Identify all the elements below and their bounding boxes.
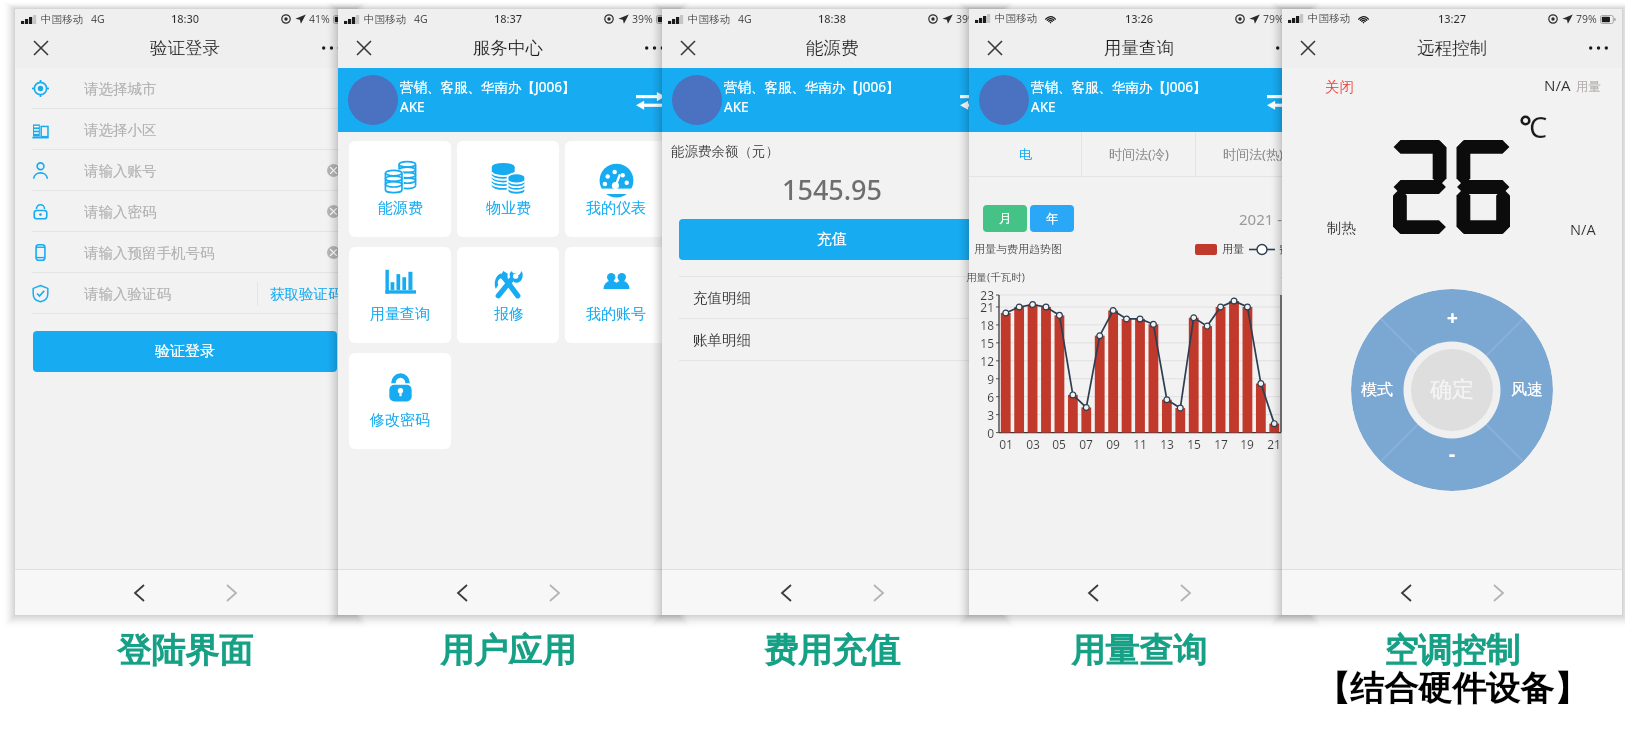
button[interactable]: 请输入账号: [15, 150, 355, 191]
staticText: -: [1449, 441, 1456, 467]
button[interactable]: Back: [1077, 577, 1109, 609]
button[interactable]: Switch account: [1266, 85, 1296, 115]
button[interactable]: 验证登录: [33, 331, 337, 372]
staticText: 请输入预留手机号码: [84, 244, 215, 262]
button[interactable]: Back: [1390, 577, 1422, 609]
button[interactable]: Switch account: [959, 85, 989, 115]
staticText: 41%: [309, 12, 330, 26]
button[interactable]: More options: [318, 35, 344, 61]
staticText: AKE: [400, 98, 425, 116]
staticText: 年: [1046, 211, 1059, 227]
button[interactable]: [979, 75, 1029, 125]
staticText: 电: [1019, 146, 1032, 162]
button[interactable]: 请输入验证码: [15, 273, 355, 314]
button[interactable]: 请输入预留手机号码: [15, 232, 355, 273]
staticText: 2021 - 3: [1239, 209, 1295, 229]
button[interactable]: 时间法(冷): [1082, 132, 1195, 176]
button[interactable]: More options: [1585, 35, 1611, 61]
staticText: 费用(元): [1281, 270, 1319, 284]
button[interactable]: 请选择小区: [15, 109, 355, 150]
staticText: 远程控制: [1417, 37, 1487, 59]
button[interactable]: Close: [982, 35, 1008, 61]
staticText: +: [1447, 305, 1458, 331]
button[interactable]: 报修: [457, 247, 559, 343]
button[interactable]: 我的仪表: [565, 141, 667, 237]
button[interactable]: 电: [969, 132, 1081, 176]
button[interactable]: 请选择城市: [15, 68, 355, 109]
staticText: 21: [969, 299, 994, 315]
button[interactable]: 能源费: [349, 141, 451, 237]
button[interactable]: Close: [351, 35, 377, 61]
button[interactable]: 充值: [679, 219, 985, 260]
staticText: 6: [969, 389, 994, 405]
staticText: 中国移动: [41, 13, 83, 26]
button[interactable]: 请输入密码: [15, 191, 355, 232]
staticText: 23: [969, 287, 994, 303]
staticText: 用量与费用趋势图: [974, 242, 1062, 256]
button[interactable]: 我的账号: [565, 247, 667, 343]
staticText: 【结合硬件设备】: [1302, 667, 1602, 710]
staticText: 用量查询: [1104, 37, 1174, 59]
staticText: 13:26: [1125, 11, 1154, 26]
button[interactable]: Back: [770, 577, 802, 609]
staticText: 确定: [1430, 376, 1474, 404]
button[interactable]: 物业费: [457, 141, 559, 237]
staticText: 79%: [1576, 12, 1597, 26]
staticText: 营销、客服、华南办【J006】: [1031, 78, 1207, 96]
button[interactable]: 用量查询: [349, 247, 451, 343]
button[interactable]: Forward: [215, 577, 247, 609]
staticText: 0: [969, 425, 994, 441]
button[interactable]: Back: [123, 577, 155, 609]
staticText: 07: [1075, 436, 1097, 452]
staticText: 请输入验证码: [84, 285, 171, 303]
button[interactable]: Close: [675, 35, 701, 61]
staticText: 15: [1183, 436, 1205, 452]
staticText: 4G: [91, 12, 105, 26]
staticText: 中国移动: [364, 13, 406, 26]
button[interactable]: More options: [641, 35, 667, 61]
staticText: 我的仪表: [586, 199, 646, 218]
button[interactable]: 月: [983, 205, 1027, 232]
staticText: 39%: [632, 12, 653, 26]
staticText: 时间法(冷): [1109, 145, 1169, 163]
staticText: 验证登录: [155, 342, 215, 361]
staticText: 修改密码: [370, 411, 430, 430]
button[interactable]: Close: [1295, 35, 1321, 61]
staticText: 时间法(热): [1223, 145, 1283, 163]
staticText: 能源费: [378, 199, 423, 218]
button[interactable]: [1351, 289, 1553, 491]
button[interactable]: 时间法(热): [1196, 132, 1309, 176]
button[interactable]: [672, 75, 722, 125]
staticText: AKE: [724, 98, 749, 116]
staticText: 01: [995, 436, 1017, 452]
button[interactable]: [348, 75, 398, 125]
staticText: 请选择城市: [84, 80, 157, 98]
button[interactable]: 账单明细: [693, 319, 988, 360]
button[interactable]: 获取验证码: [258, 273, 355, 314]
staticText: 18:30: [171, 11, 200, 26]
staticText: 03: [1022, 436, 1044, 452]
staticText: 营销、客服、华南办【J006】: [724, 78, 900, 96]
button[interactable]: Back: [446, 577, 478, 609]
button[interactable]: More options: [965, 35, 991, 61]
staticText: 请输入账号: [84, 162, 157, 180]
button[interactable]: 修改密码: [349, 353, 451, 449]
button[interactable]: Forward: [862, 577, 894, 609]
button[interactable]: 充值明细: [693, 277, 988, 318]
button[interactable]: 年: [1030, 205, 1074, 232]
button[interactable]: Forward: [1482, 577, 1514, 609]
staticText: 13:27: [1438, 11, 1467, 26]
button[interactable]: Forward: [1169, 577, 1201, 609]
staticText: 79%: [1263, 12, 1284, 26]
staticText: 09: [1102, 436, 1124, 452]
staticText: 制热: [1327, 219, 1356, 237]
staticText: 服务中心: [473, 37, 543, 59]
button[interactable]: Forward: [538, 577, 570, 609]
staticText: 关闭: [1325, 78, 1354, 96]
button[interactable]: Switch account: [635, 85, 665, 115]
staticText: 11: [1129, 436, 1151, 452]
button[interactable]: Close: [28, 35, 54, 61]
button[interactable]: More options: [1272, 35, 1298, 61]
staticText: 1545.95: [782, 171, 883, 208]
staticText: 18:37: [494, 11, 523, 26]
